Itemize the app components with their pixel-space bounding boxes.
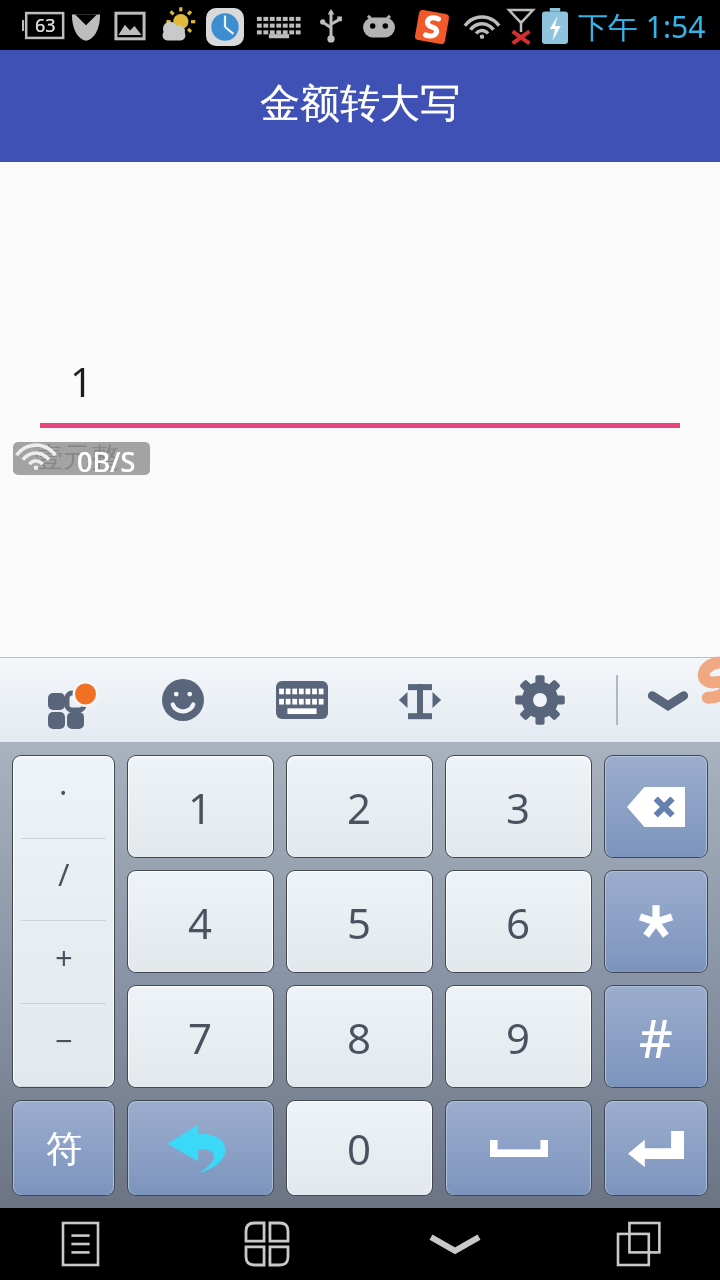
staticText: 壹元整 [35,440,119,475]
button[interactable]: 4 [129,872,272,972]
button[interactable]: Apps [30,657,96,742]
staticText: 6 [506,894,531,951]
button[interactable]: Undo [129,1102,272,1195]
button[interactable]: # [606,987,706,1087]
button[interactable]: 符 [14,1102,113,1195]
button[interactable]: Emoji [150,657,216,742]
staticText: − [55,1019,73,1061]
button[interactable]: Space [447,1102,590,1195]
button[interactable]: Move cursor [387,657,453,742]
staticText: 3 [506,779,531,836]
button[interactable]: 7 [129,987,272,1087]
button[interactable]: 9 [447,987,590,1087]
button[interactable]: 8 [288,987,431,1087]
button[interactable]: Settings [507,657,573,742]
button[interactable]: Asterisk [606,872,706,972]
staticText: 4 [188,894,213,951]
staticText: 下午 1:54 [578,6,706,47]
button[interactable]: Recents [595,1208,685,1280]
staticText: 金额转大写 [260,78,460,128]
button[interactable]: Backspace [606,757,706,857]
button[interactable]: 1 [129,757,272,857]
staticText: 1 [70,354,93,408]
button[interactable]: 3 [447,757,590,857]
button[interactable]: 6 [447,872,590,972]
button[interactable]: Menu [35,1208,125,1280]
button[interactable]: 5 [288,872,431,972]
button[interactable]: Hide keyboard [635,657,701,742]
staticText: 9 [506,1009,531,1066]
button[interactable]: Back [410,1208,500,1280]
staticText: · [59,771,68,813]
staticText: 2 [347,779,372,836]
staticText: 8 [347,1009,372,1066]
staticText: 63 [35,13,56,38]
staticText: / [58,853,70,895]
button[interactable]: Home [222,1208,312,1280]
staticText: 1 [188,779,213,836]
staticText: 0 [347,1120,372,1177]
staticText: 7 [188,1009,213,1066]
button[interactable]: 2 [288,757,431,857]
button[interactable]: Keyboard [269,657,335,742]
staticText: 5 [347,894,372,951]
staticText: + [55,936,73,978]
button[interactable]: Amount input field [40,342,680,428]
button[interactable]: Enter [606,1102,706,1195]
button[interactable]: 0 [288,1102,431,1195]
staticText: # [639,1002,673,1073]
staticText: 0B/S [77,443,136,475]
staticText: 符 [46,1126,82,1171]
button[interactable]: Operators [14,757,113,1087]
